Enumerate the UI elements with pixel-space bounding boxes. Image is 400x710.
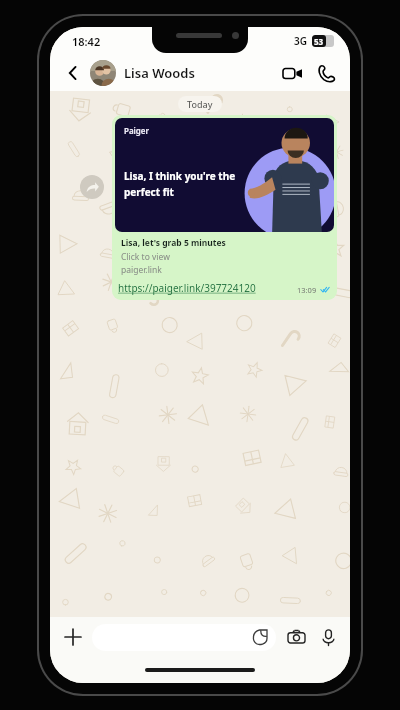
button[interactable] [92, 624, 276, 651]
button[interactable]: Voice message [316, 625, 340, 649]
button[interactable]: Lisa Woods [90, 60, 278, 86]
staticText: Paiger [124, 125, 150, 136]
staticText: 53 [314, 36, 324, 47]
staticText: 13:09 [297, 285, 317, 295]
button[interactable]: Camera [284, 625, 308, 649]
staticText: 3G [294, 34, 307, 48]
staticText: Lisa, let's grab 5 minutes [121, 237, 226, 249]
staticText: perfect fit [124, 185, 174, 199]
button[interactable]: Back [60, 60, 86, 86]
button[interactable]: Paiger [112, 115, 337, 300]
staticText: Lisa Woods [124, 64, 195, 82]
staticText: Lisa, I think you're the [124, 169, 236, 183]
button[interactable]: Attach [60, 624, 86, 650]
staticText: Today [187, 98, 213, 110]
button[interactable]: Voice call [312, 59, 340, 87]
staticText: 18:42 [72, 34, 101, 49]
staticText: Click to view [121, 251, 170, 263]
button[interactable]: Forward [80, 175, 104, 199]
staticText: paiger.link [121, 264, 162, 276]
button[interactable]: Video call [278, 59, 306, 87]
staticText: https://paiger.link/397724120 [118, 281, 256, 295]
